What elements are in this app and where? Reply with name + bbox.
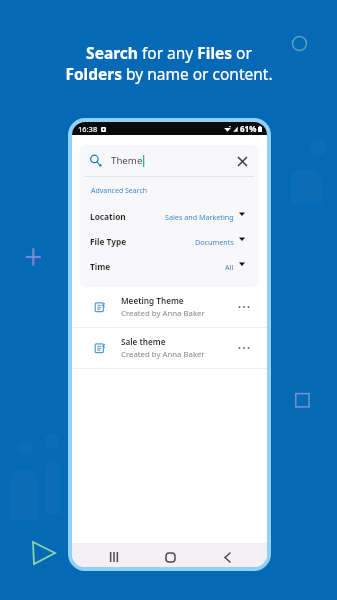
staticText: Theme [111, 154, 143, 167]
staticText: Advanced Search [91, 186, 148, 196]
staticText: Location [90, 211, 126, 222]
staticText: 61% [240, 123, 257, 134]
button[interactable]: Location [79, 204, 259, 229]
button[interactable]: More options [236, 340, 252, 356]
staticText: Search for any Files or [86, 42, 252, 63]
staticText: All [225, 262, 234, 272]
button[interactable]: More options [236, 299, 252, 315]
button[interactable]: Meeting Theme [72, 287, 267, 327]
staticText: 16:38 [78, 124, 98, 134]
staticText: Folders by name or content. [65, 63, 273, 84]
button[interactable]: Clear search [235, 154, 249, 168]
staticText: Created by Anna Baker [121, 308, 205, 319]
staticText: Sale theme [121, 336, 166, 347]
button[interactable]: Recent apps [101, 547, 127, 567]
button[interactable]: Sale theme [72, 328, 267, 368]
button[interactable]: Back [212, 547, 238, 567]
staticText: File Type [90, 236, 127, 247]
staticText: Time [90, 261, 111, 272]
staticText: Created by Anna Baker [121, 349, 205, 360]
staticText: Sales and Marketing [165, 212, 234, 222]
staticText: Meeting Theme [121, 295, 184, 306]
button[interactable]: File Type [79, 229, 259, 254]
staticText: Documents [195, 237, 234, 247]
button[interactable]: Home [157, 547, 183, 567]
button[interactable]: Time [79, 254, 259, 279]
